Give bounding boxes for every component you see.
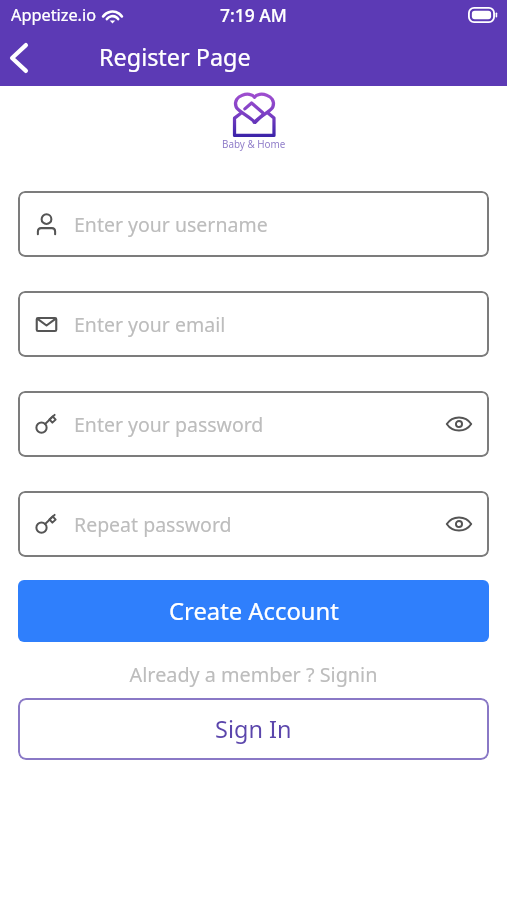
- button[interactable]: Back: [0, 36, 44, 80]
- staticText: Repeat password: [74, 511, 232, 538]
- button[interactable]: Enter your email: [18, 291, 489, 357]
- button[interactable]: Create Account: [18, 580, 489, 642]
- button[interactable]: Enter your username: [18, 191, 489, 257]
- button[interactable]: Enter your password: [18, 391, 489, 457]
- staticText: Register Page: [99, 41, 251, 73]
- button[interactable]: Toggle password visibility: [443, 408, 475, 440]
- button[interactable]: Sign In: [18, 698, 489, 760]
- button[interactable]: Repeat password: [18, 491, 489, 557]
- staticText: Enter your password: [74, 411, 264, 438]
- staticText: Appetize.io: [11, 4, 97, 26]
- staticText: Enter your email: [74, 311, 226, 338]
- staticText: Already a member ? Signin: [0, 661, 507, 688]
- staticText: Create Account: [169, 595, 339, 627]
- staticText: Sign In: [215, 713, 292, 745]
- staticText: Enter your username: [74, 211, 268, 238]
- button[interactable]: Toggle password visibility: [443, 508, 475, 540]
- staticText: Baby & Home: [222, 137, 286, 150]
- staticText: 7:19 AM: [220, 3, 287, 27]
